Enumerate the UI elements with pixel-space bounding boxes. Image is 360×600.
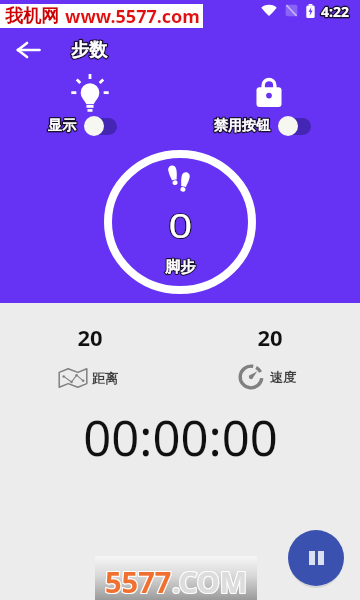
staticText: 0 — [168, 203, 192, 248]
staticText: 5577 — [105, 562, 172, 600]
button[interactable]: 显示 — [48, 115, 117, 137]
staticText: 步数 — [71, 39, 107, 62]
staticText: 脚步 — [165, 258, 195, 277]
button[interactable]: 距离 — [58, 366, 118, 390]
staticText: 20 — [77, 322, 103, 352]
staticText: 显示 — [48, 117, 76, 135]
staticText: 步数 — [71, 39, 107, 62]
staticText: 4:22 — [321, 2, 349, 21]
staticText: .COM — [172, 562, 248, 600]
staticText: 禁用按钮 — [214, 117, 270, 135]
staticText: 5577 — [105, 562, 172, 600]
button[interactable]: Back — [9, 34, 47, 66]
button[interactable]: Pause — [288, 530, 344, 586]
staticText: 00:00:00 — [83, 404, 278, 471]
staticText: 脚步 — [165, 258, 195, 277]
staticText: www.5577.com — [65, 4, 200, 28]
staticText: .COM — [172, 562, 248, 600]
staticText: 禁用按钮 — [214, 117, 270, 135]
staticText: 0 — [168, 203, 192, 248]
staticText: 我机网 — [5, 5, 59, 28]
staticText: 距离 — [92, 370, 118, 386]
button[interactable]: 禁用按钮 — [214, 115, 311, 137]
staticText: 速度 — [270, 369, 296, 385]
staticText: 4:22 — [321, 2, 349, 21]
button[interactable]: 速度 — [238, 364, 296, 390]
staticText: 显示 — [48, 117, 76, 135]
staticText: 20 — [257, 322, 283, 352]
